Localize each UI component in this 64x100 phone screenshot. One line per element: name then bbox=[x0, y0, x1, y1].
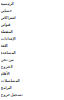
staticText: من نحن bbox=[0, 57, 13, 62]
staticText: المسلسلات bbox=[0, 78, 19, 83]
staticText: البرامج bbox=[0, 85, 11, 90]
staticText: الخروج bbox=[0, 64, 12, 69]
staticText: حسابي bbox=[0, 8, 11, 13]
staticText: قنواتي bbox=[0, 22, 10, 27]
staticText: اللغة bbox=[0, 43, 7, 48]
staticText: اشتراكاتي bbox=[0, 15, 15, 20]
staticText: الأفلام bbox=[0, 71, 9, 76]
staticText: الرئيسية bbox=[0, 1, 13, 6]
staticText: المساعدة bbox=[0, 50, 15, 55]
staticText: تسجيل خروج bbox=[0, 92, 22, 97]
staticText: الإعدادات bbox=[0, 36, 15, 41]
staticText: المفضلة bbox=[0, 29, 12, 34]
